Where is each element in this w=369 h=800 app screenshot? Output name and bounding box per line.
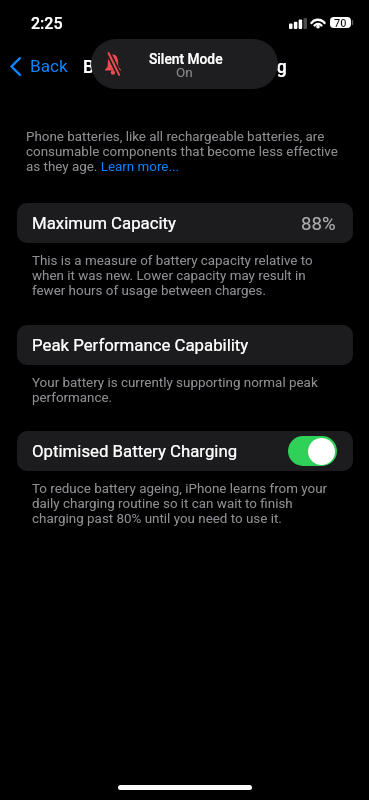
staticText: Silent Mode bbox=[149, 51, 223, 67]
staticText: On bbox=[176, 64, 193, 80]
staticText: 88% bbox=[301, 213, 336, 235]
button[interactable]: Silent mode on bbox=[91, 39, 278, 89]
staticText: Back bbox=[30, 56, 68, 76]
staticText: 2:25 bbox=[31, 14, 63, 33]
button[interactable]: Optimised Battery Charging toggle, on bbox=[288, 436, 337, 466]
staticText: 70 bbox=[334, 17, 347, 28]
button[interactable]: Maximum Capacity bbox=[17, 203, 353, 243]
other: Silent mode on bbox=[104, 53, 122, 75]
staticText: Phone batteries, like all rechargeable b… bbox=[26, 129, 342, 174]
staticText: Optimised Battery Charging bbox=[32, 441, 238, 461]
staticText: Your battery is currently supporting nor… bbox=[32, 375, 338, 405]
staticText: Battery Health & Charging bbox=[83, 57, 287, 78]
staticText: Maximum Capacity bbox=[32, 213, 177, 233]
staticText: This is a measure of battery capacity re… bbox=[32, 253, 338, 298]
button[interactable]: Peak Performance Capability bbox=[17, 325, 353, 365]
button[interactable]: Back bbox=[2, 51, 78, 81]
staticText: To reduce battery ageing, iPhone learns … bbox=[32, 481, 338, 526]
staticText: Peak Performance Capability bbox=[32, 335, 249, 355]
